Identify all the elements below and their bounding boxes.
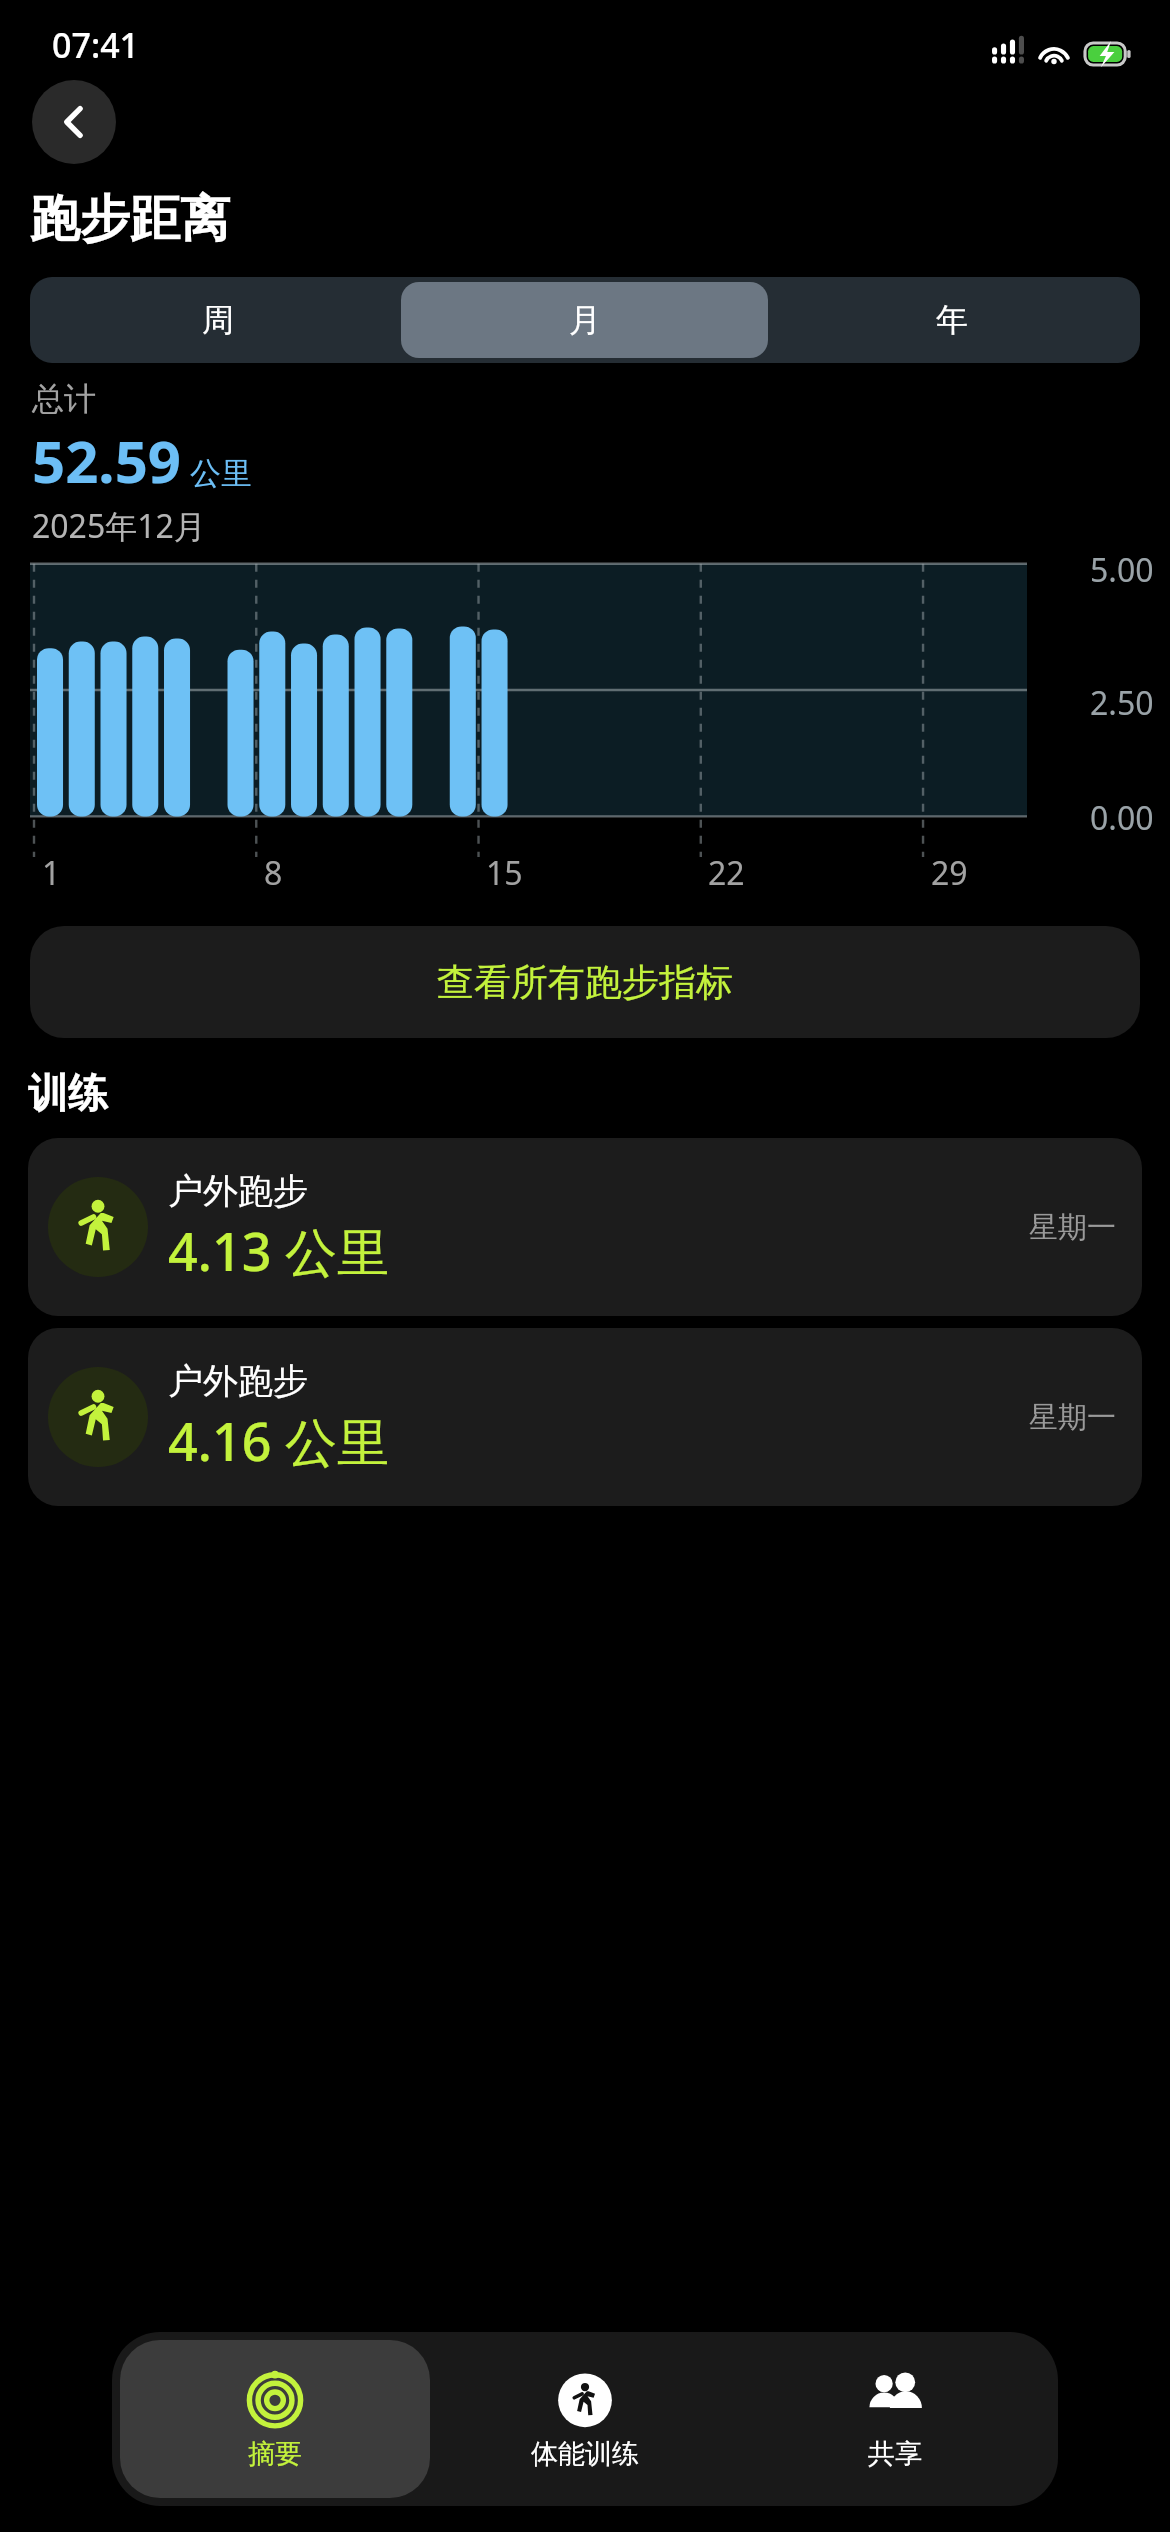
button[interactable]: 共享 bbox=[740, 2340, 1050, 2498]
staticText: 15 bbox=[486, 851, 523, 895]
button[interactable]: 周 bbox=[35, 282, 401, 358]
staticText: 22 bbox=[708, 851, 745, 895]
staticText: 8 bbox=[264, 851, 283, 895]
button[interactable]: 体能训练 bbox=[430, 2340, 740, 2498]
button[interactable]: 年 bbox=[768, 282, 1135, 358]
staticText: 5.00 bbox=[1090, 548, 1154, 592]
staticText: 公里 bbox=[190, 454, 252, 493]
staticText: 1 bbox=[42, 851, 61, 895]
button[interactable]: 月 bbox=[401, 282, 768, 358]
staticText: 共享 bbox=[868, 2437, 922, 2471]
staticText: 总计 bbox=[32, 379, 96, 419]
staticText: 52.59 bbox=[32, 421, 182, 500]
staticText: 体能训练 bbox=[531, 2437, 639, 2471]
button[interactable]: 查看所有跑步指标 bbox=[30, 926, 1140, 1038]
staticText: 2.50 bbox=[1090, 681, 1154, 725]
staticText: 29 bbox=[931, 851, 968, 895]
staticText: 月 bbox=[569, 300, 601, 340]
staticText: 星期一 bbox=[1029, 1399, 1116, 1436]
button[interactable]: 户外跑步 bbox=[28, 1328, 1142, 1506]
staticText: 4.16 公里 bbox=[168, 1405, 389, 1476]
staticText: 2025年12月 bbox=[32, 504, 206, 548]
button[interactable]: 户外跑步 bbox=[28, 1138, 1142, 1316]
staticText: 年 bbox=[936, 300, 968, 340]
staticText: 4.13 公里 bbox=[168, 1215, 389, 1286]
staticText: 户外跑步 bbox=[168, 1359, 308, 1403]
staticText: 训练 bbox=[28, 1068, 108, 1118]
staticText: 户外跑步 bbox=[168, 1169, 308, 1213]
staticText: 摘要 bbox=[248, 2437, 302, 2471]
staticText: 07:41 bbox=[52, 22, 140, 68]
staticText: 周 bbox=[202, 300, 234, 340]
staticText: 查看所有跑步指标 bbox=[437, 959, 733, 1006]
button[interactable]: 返回 bbox=[32, 80, 116, 164]
button[interactable]: 摘要 bbox=[120, 2340, 430, 2498]
staticText: 0.00 bbox=[1090, 796, 1154, 840]
staticText: 星期一 bbox=[1029, 1209, 1116, 1246]
staticText: 跑步距离 bbox=[30, 188, 230, 251]
